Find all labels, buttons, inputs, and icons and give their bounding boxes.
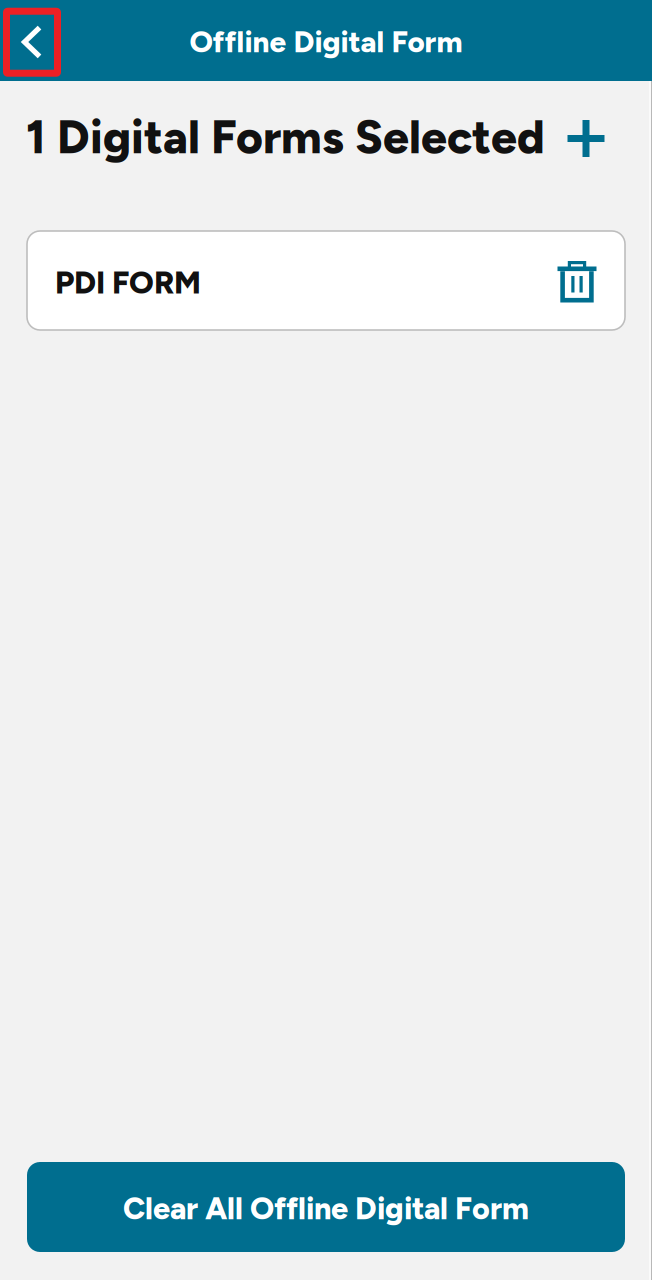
button[interactable]: PDI FORM (27, 231, 551, 330)
staticText: Offline Digital Form (189, 24, 462, 60)
staticText: PDI FORM (55, 264, 201, 301)
button[interactable]: Add digital form (558, 107, 652, 166)
button[interactable]: Back (10, 14, 54, 70)
staticText: Clear All Offline Digital Form (123, 1190, 529, 1227)
staticText: 1 Digital Forms Selected (26, 109, 545, 165)
button[interactable]: Clear All Offline Digital Form (27, 1162, 625, 1252)
button[interactable]: Delete PDI Form (551, 254, 625, 307)
